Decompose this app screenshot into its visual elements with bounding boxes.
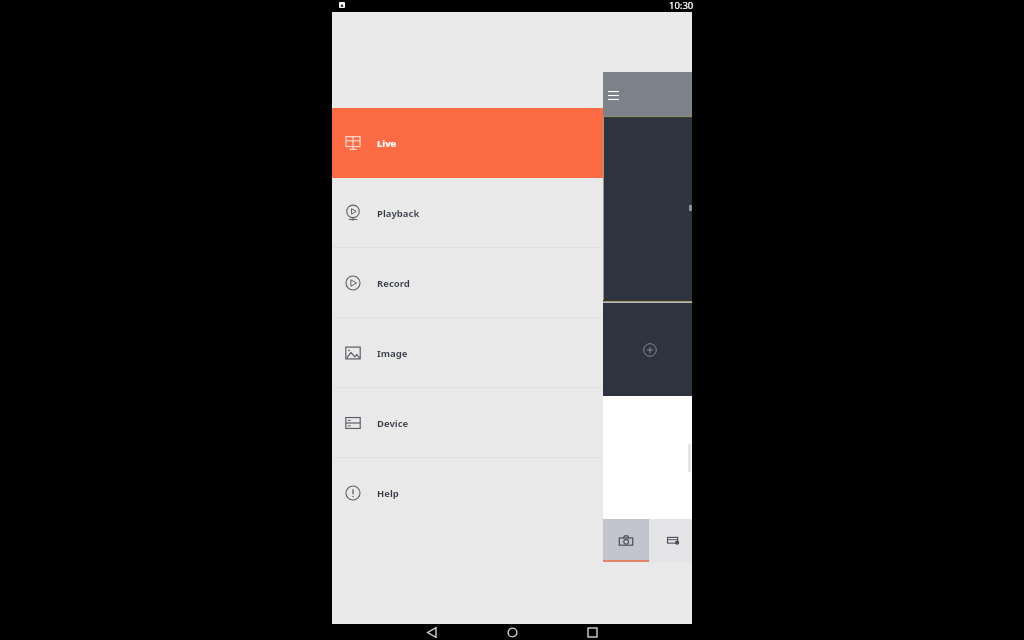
button[interactable]: Home (505, 625, 519, 639)
staticText: Image (377, 347, 408, 360)
staticText: Help (377, 487, 399, 500)
button[interactable]: Image (332, 318, 603, 388)
button[interactable]: Live (332, 108, 603, 178)
button[interactable]: Camera 1 live view (603, 117, 692, 303)
button[interactable]: Record video (649, 519, 697, 562)
button[interactable]: Add camera (643, 343, 657, 357)
button[interactable]: Record (332, 248, 603, 318)
staticText: Live (377, 137, 397, 150)
button[interactable]: Help (332, 458, 603, 528)
button[interactable]: Recent apps (585, 625, 599, 639)
button[interactable]: Open navigation menu (602, 84, 624, 106)
staticText: 10:30 (669, 0, 694, 11)
staticText: Record (377, 277, 410, 290)
staticText: Device (377, 417, 409, 430)
button[interactable]: Device (332, 388, 603, 458)
staticText: Playback (377, 207, 420, 220)
button[interactable]: Back (425, 625, 439, 639)
button[interactable]: Playback (332, 178, 603, 248)
button[interactable]: Snapshot (603, 519, 649, 562)
